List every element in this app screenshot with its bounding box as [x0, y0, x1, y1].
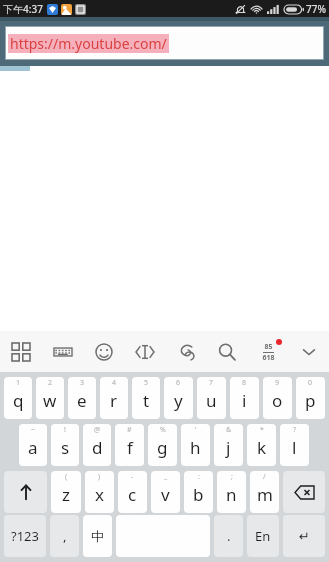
staticText: 0 — [308, 378, 313, 388]
staticText: p — [305, 389, 316, 412]
button[interactable]: Backspace — [283, 471, 325, 513]
staticText: ? — [293, 425, 297, 435]
staticText: & — [226, 425, 232, 435]
staticText: t — [143, 389, 150, 412]
staticText: 2 — [48, 378, 53, 388]
staticText: * — [260, 425, 264, 435]
staticText: k — [257, 436, 267, 459]
staticText: 618 — [262, 353, 275, 363]
button[interactable]: . — [214, 515, 243, 557]
button[interactable]: Clipboard — [169, 335, 203, 369]
staticText: o — [272, 389, 283, 412]
button[interactable]: 7 — [197, 377, 226, 419]
staticText: q — [13, 389, 24, 412]
staticText: h — [190, 436, 201, 459]
staticText: % — [160, 425, 166, 435]
button[interactable]: 2 — [36, 377, 64, 419]
button[interactable]: 6 — [164, 377, 193, 419]
staticText: 8 — [242, 378, 247, 388]
staticText: d — [92, 436, 103, 459]
staticText: w — [43, 389, 57, 412]
staticText: c — [128, 483, 137, 506]
button[interactable]: 1 — [4, 377, 32, 419]
button[interactable]: Hide keyboard — [292, 335, 326, 369]
staticText: 6 — [176, 378, 181, 388]
staticText: # — [127, 425, 132, 435]
staticText: En — [255, 527, 271, 545]
staticText: ! — [64, 425, 66, 435]
button[interactable]: _ — [151, 471, 180, 513]
button[interactable]: & — [214, 424, 243, 466]
button[interactable]: En — [247, 515, 279, 557]
staticText: , — [63, 527, 67, 545]
staticText: ) — [98, 472, 101, 482]
button[interactable]: , — [50, 515, 79, 557]
button[interactable]: 5 — [132, 377, 160, 419]
button[interactable]: 8 — [230, 377, 259, 419]
staticText: s — [61, 436, 70, 459]
button[interactable]: 9 — [263, 377, 292, 419]
button[interactable]: Number translation — [251, 335, 285, 369]
staticText: l — [292, 436, 297, 459]
button[interactable]: 4 — [100, 377, 128, 419]
button[interactable]: * — [247, 424, 276, 466]
staticText: 7 — [209, 378, 214, 388]
button[interactable]: ~ — [19, 424, 47, 466]
staticText: @ — [94, 425, 101, 435]
button[interactable]: Search — [210, 335, 244, 369]
button[interactable]: ) — [85, 471, 114, 513]
staticText: 3 — [80, 378, 85, 388]
button[interactable]: Toolbox — [4, 335, 38, 369]
staticText: 77% — [306, 2, 326, 16]
staticText: r — [110, 389, 118, 412]
button[interactable]: ? — [280, 424, 309, 466]
staticText: 5 — [144, 378, 149, 388]
staticText: e — [77, 389, 87, 412]
button[interactable]: # — [115, 424, 144, 466]
button[interactable]: Emoji — [87, 335, 121, 369]
button[interactable]: / — [250, 471, 279, 513]
staticText: 9 — [275, 378, 280, 388]
staticText: ?123 — [11, 527, 39, 545]
button[interactable]: : — [184, 471, 213, 513]
staticText: m — [257, 483, 273, 506]
staticText: 4 — [112, 378, 117, 388]
staticText: f — [127, 436, 133, 459]
staticText: ; — [231, 472, 233, 482]
staticText: ( — [65, 472, 68, 482]
staticText: a — [28, 436, 38, 459]
staticText: 中 — [91, 528, 104, 544]
button[interactable]: Cursor control — [128, 335, 162, 369]
button[interactable]: 3 — [68, 377, 96, 419]
staticText: - — [131, 472, 134, 482]
button[interactable]: https://m.youtube.com/ — [5, 26, 324, 60]
staticText: b — [193, 483, 204, 506]
button[interactable]: ( — [51, 471, 81, 513]
staticText: ' — [195, 425, 197, 435]
staticText: z — [62, 483, 70, 506]
staticText: i — [242, 389, 247, 412]
staticText: n — [226, 483, 237, 506]
staticText: 1 — [16, 378, 21, 388]
staticText: : — [198, 472, 200, 482]
staticText: x — [95, 483, 104, 506]
button[interactable]: ?123 — [4, 515, 46, 557]
button[interactable]: ; — [217, 471, 246, 513]
staticText: ~ — [31, 425, 36, 435]
button[interactable]: ! — [51, 424, 79, 466]
button[interactable]: Shift — [4, 471, 47, 513]
button[interactable]: % — [148, 424, 177, 466]
button[interactable]: ' — [181, 424, 210, 466]
staticText: / — [263, 472, 266, 482]
button[interactable]: - — [118, 471, 147, 513]
button[interactable]: 0 — [296, 377, 325, 419]
staticText: y — [174, 389, 183, 412]
staticText: _ — [164, 472, 168, 482]
staticText: j — [226, 436, 231, 459]
button[interactable]: 中 — [83, 515, 112, 557]
button[interactable]: @ — [83, 424, 111, 466]
staticText: https://m.youtube.com/ — [10, 34, 167, 53]
button[interactable]: ↵ — [283, 515, 325, 557]
button[interactable]: Keyboard layout — [46, 335, 80, 369]
